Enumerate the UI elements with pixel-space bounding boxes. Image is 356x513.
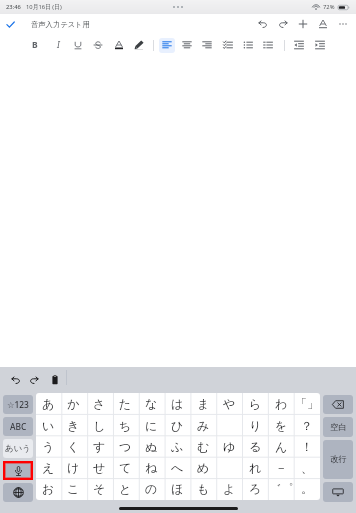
button[interactable]: Align right [197,37,217,53]
button[interactable]: れ [242,458,268,479]
button[interactable]: や [216,393,242,415]
button[interactable]: す [86,437,112,458]
button[interactable]: Undo [253,14,273,34]
button[interactable]: ち [112,415,138,437]
button[interactable]: わ [268,393,294,415]
button[interactable]: 空白 [323,417,353,437]
staticText: 10月16日 (日) [26,3,62,11]
button[interactable]: お [36,479,61,500]
button[interactable]: は [164,393,190,415]
staticText: よ [223,481,236,496]
button[interactable]: Voice input [5,463,31,478]
button[interactable]: － [268,458,294,479]
button[interactable]: て [112,458,138,479]
button[interactable]: Strikethrough [88,37,108,53]
button[interactable]: へ [164,458,190,479]
button[interactable]: Redo [24,367,43,393]
staticText: け [67,460,80,475]
button[interactable]: き [61,415,86,437]
button[interactable]: ね [138,458,164,479]
button[interactable]: も [190,479,216,500]
button[interactable]: め [190,458,216,479]
staticText: す [93,439,106,454]
button[interactable]: ま [190,393,216,415]
button[interactable]: さ [86,393,112,415]
button[interactable]: こ [61,479,86,500]
button[interactable]: 改行 [323,440,353,479]
button[interactable]: く [61,437,86,458]
button[interactable]: Align left [157,37,177,53]
button[interactable]: Redo [273,14,293,34]
staticText: せ [93,460,106,475]
button[interactable]: ろ [242,479,268,500]
button[interactable]: Backspace [323,395,353,414]
button[interactable]: い [36,415,61,437]
button[interactable]: ふ [164,437,190,458]
button[interactable]: る [242,437,268,458]
button[interactable]: Text color [109,37,129,53]
button[interactable]: に [138,415,164,437]
button[interactable] [216,415,242,437]
button[interactable]: Done [0,14,20,34]
button[interactable]: え [36,458,61,479]
button[interactable]: Format [313,14,333,34]
button[interactable]: Add [293,14,313,34]
button[interactable]: ら [242,393,268,415]
button[interactable]: ？ [294,415,320,437]
button[interactable]: む [190,437,216,458]
button[interactable]: ！ [294,437,320,458]
button[interactable]: Decrease indent [289,37,309,53]
button[interactable]: の [138,479,164,500]
button[interactable]: Underline [68,37,88,53]
button[interactable]: Clipboard [45,367,64,393]
staticText: ゆ [223,439,236,454]
staticText: む [197,439,210,454]
button[interactable]: ほ [164,479,190,500]
button[interactable]: ☆123 [3,395,33,414]
button[interactable]: Checklist [218,37,238,53]
button[interactable]: Italic [48,37,68,53]
staticText: － [275,460,287,475]
button[interactable]: Numbered list [258,37,278,53]
button[interactable]: う [36,437,61,458]
button[interactable]: 「」 [294,393,320,415]
button[interactable]: Align center [177,37,197,53]
button[interactable]: 、 [294,458,320,479]
button[interactable]: し [86,415,112,437]
staticText: ね [145,460,158,475]
button[interactable]: Increase indent [310,37,330,53]
button[interactable]: Bulleted list [238,37,258,53]
button[interactable]: を [268,415,294,437]
button[interactable]: ゛゜ [268,479,294,500]
button[interactable]: あいう [3,439,33,458]
button[interactable]: More options [333,14,353,34]
button[interactable]: Highlight [129,37,149,53]
button[interactable]: け [61,458,86,479]
button[interactable]: そ [86,479,112,500]
button[interactable]: よ [216,479,242,500]
button[interactable]: 。 [294,479,320,500]
button[interactable]: あ [36,393,61,415]
button[interactable] [216,458,242,479]
staticText: お [42,481,55,496]
staticText: ろ [249,481,262,496]
staticText: 空白 [330,422,347,433]
button[interactable]: ん [268,437,294,458]
button[interactable]: と [112,479,138,500]
button[interactable]: Switch keyboard [3,483,33,502]
staticText: ☆123 [7,399,29,410]
button[interactable]: ぬ [138,437,164,458]
button[interactable]: り [242,415,268,437]
button[interactable]: Hide keyboard [323,482,353,502]
button[interactable]: た [112,393,138,415]
button[interactable]: ひ [164,415,190,437]
button[interactable]: ゆ [216,437,242,458]
button[interactable]: み [190,415,216,437]
button[interactable]: Undo [6,367,25,393]
button[interactable]: つ [112,437,138,458]
button[interactable]: せ [86,458,112,479]
button[interactable]: ABC [3,417,33,436]
button[interactable]: な [138,393,164,415]
button[interactable]: Bold [25,37,45,53]
button[interactable]: か [61,393,86,415]
